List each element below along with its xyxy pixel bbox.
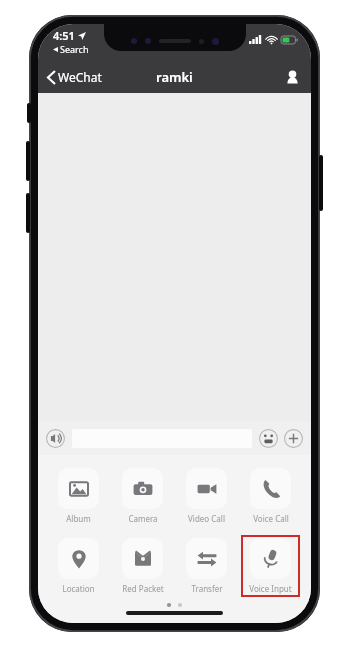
staticText: Album	[66, 513, 91, 524]
staticText: Transfer	[191, 583, 223, 594]
button[interactable]: Camera	[113, 465, 172, 527]
button[interactable]: Emoji	[259, 429, 278, 448]
staticText: Search	[60, 43, 89, 55]
button[interactable]: WeChat	[38, 63, 112, 91]
staticText: Voice Input	[249, 583, 292, 594]
staticText: Red Packet	[122, 583, 164, 594]
staticText: Location	[62, 583, 95, 594]
staticText: Voice Call	[253, 513, 289, 524]
button[interactable]: Contact profile	[274, 64, 311, 90]
button[interactable]: Video Call	[177, 465, 236, 527]
button[interactable]: Transfer	[177, 535, 236, 597]
button[interactable]: Voice Input	[241, 535, 300, 597]
button[interactable]: Location	[49, 535, 108, 597]
button[interactable]: Voice message	[46, 429, 65, 448]
staticText: Camera	[128, 513, 158, 524]
button[interactable]: Album	[49, 465, 108, 527]
button[interactable]: Red Packet	[113, 535, 172, 597]
staticText: ramki	[156, 68, 193, 86]
staticText: 4:51	[53, 28, 75, 43]
button[interactable]: Voice Call	[241, 465, 300, 527]
staticText: Video Call	[188, 513, 225, 524]
staticText: WeChat	[58, 69, 102, 85]
button[interactable]: More options	[284, 429, 303, 448]
